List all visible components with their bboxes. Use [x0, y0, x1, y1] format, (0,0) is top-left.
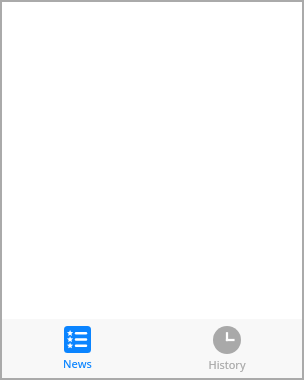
staticText: News — [63, 356, 92, 371]
button[interactable]: News — [2, 319, 152, 378]
staticText: History — [208, 357, 246, 372]
other: History — [213, 326, 241, 354]
button[interactable]: History — [152, 319, 302, 378]
